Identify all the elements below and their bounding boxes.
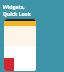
button[interactable]	[4, 19, 36, 71]
staticText: Quick Look	[3, 11, 31, 18]
staticText: Widgets,	[3, 4, 25, 11]
